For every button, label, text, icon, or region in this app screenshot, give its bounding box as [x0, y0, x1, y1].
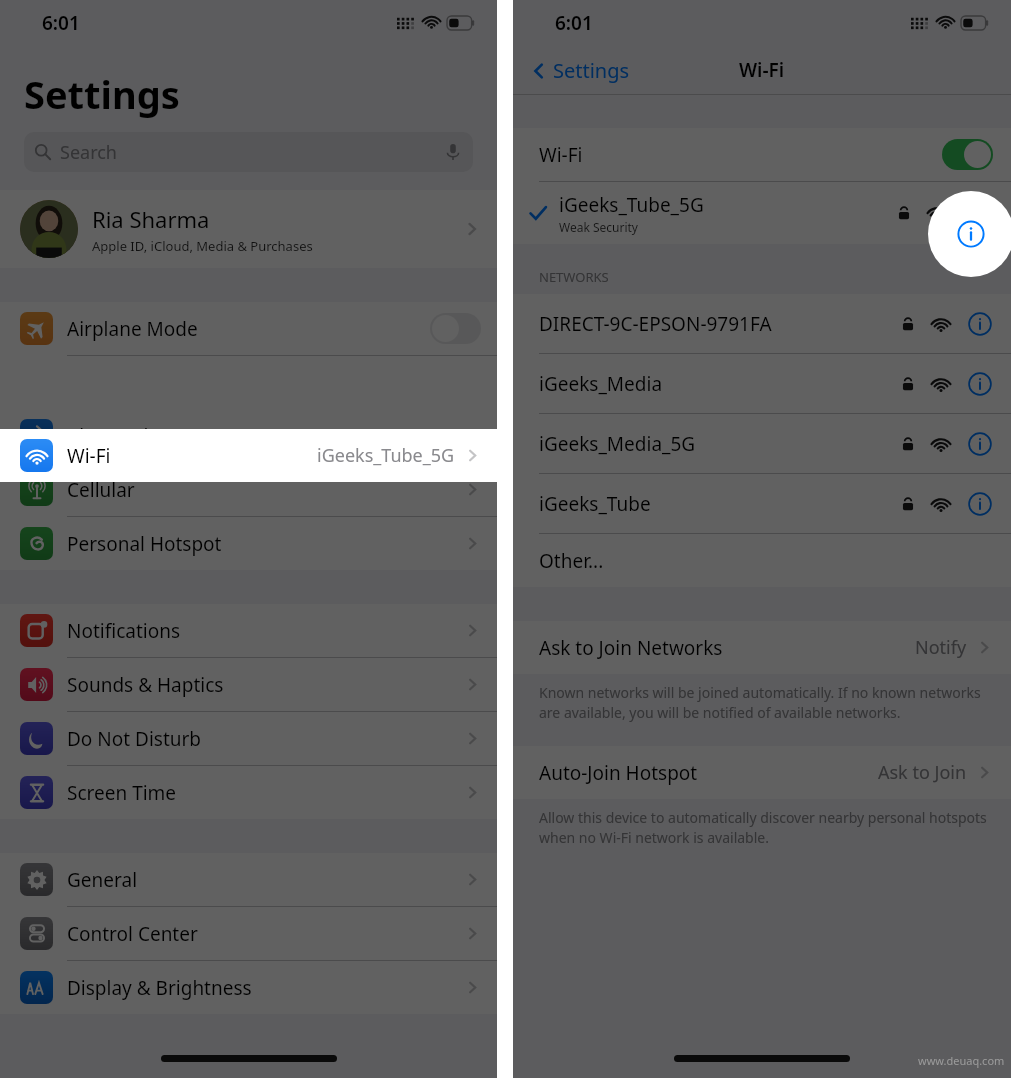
- button[interactable]: Other...: [513, 534, 1011, 587]
- button[interactable]: Cellular: [0, 463, 497, 516]
- staticText: DIRECT-9C-EPSON-9791FA: [539, 311, 772, 337]
- staticText: Weak Security: [559, 219, 638, 235]
- staticText: General: [67, 867, 138, 893]
- button[interactable]: Search: [24, 132, 473, 172]
- button[interactable]: Info for iGeeks_Media_5G: [967, 431, 993, 457]
- button[interactable]: iGeeks_Media_5G: [513, 414, 1011, 473]
- button[interactable]: Info for iGeeks_Tube: [967, 491, 993, 517]
- staticText: Settings: [24, 68, 180, 120]
- staticText: iGeeks_Media_5G: [539, 431, 696, 457]
- button[interactable]: Settings: [529, 57, 630, 84]
- staticText: Other...: [539, 548, 604, 574]
- staticText: Ask to Join Networks: [539, 635, 723, 661]
- button[interactable]: Info for iGeeks_Media: [967, 371, 993, 397]
- staticText: Wi-Fi: [539, 142, 583, 168]
- staticText: Cellular: [67, 477, 135, 503]
- button[interactable]: Bluetooth: [0, 409, 497, 462]
- staticText: Search: [60, 140, 117, 165]
- button[interactable]: Ria Sharma: [0, 190, 497, 268]
- staticText: Bluetooth: [67, 423, 156, 449]
- staticText: 6:01: [555, 10, 593, 36]
- staticText: Auto-Join Hotspot: [539, 760, 698, 786]
- staticText: NETWORKS: [539, 268, 609, 286]
- button[interactable]: Personal Hotspot: [0, 517, 497, 570]
- staticText: Notifications: [67, 618, 181, 644]
- staticText: iGeeks_Tube_5G: [559, 192, 704, 218]
- button[interactable]: Sounds & Haptics: [0, 658, 497, 711]
- staticText: Notify: [915, 635, 967, 660]
- staticText: Wi-Fi: [739, 57, 785, 83]
- staticText: 6:01: [42, 10, 80, 36]
- button[interactable]: Control Center: [0, 907, 497, 960]
- button[interactable]: Wi-Fi: [513, 128, 1011, 181]
- staticText: iGeeks_Tube_5G: [317, 443, 455, 468]
- button[interactable]: Display & Brightness: [0, 961, 497, 1014]
- button[interactable]: Notifications: [0, 604, 497, 657]
- button[interactable]: Do Not Disturb: [0, 712, 497, 765]
- staticText: www.deuaq.com: [918, 1053, 1005, 1068]
- button[interactable]: DIRECT-9C-EPSON-9791FA: [513, 294, 1011, 353]
- staticText: Wi-Fi: [67, 443, 111, 469]
- staticText: Control Center: [67, 921, 198, 947]
- button[interactable]: Info for DIRECT-9C-EPSON-9791FA: [967, 311, 993, 337]
- button[interactable]: Airplane Mode: [0, 302, 497, 355]
- button[interactable]: Off: [430, 313, 481, 344]
- staticText: Ria Sharma: [92, 204, 210, 234]
- staticText: Airplane Mode: [67, 316, 198, 342]
- staticText: Screen Time: [67, 780, 177, 806]
- staticText: Ask to Join: [878, 760, 967, 785]
- staticText: Known networks will be joined automatica…: [539, 683, 987, 722]
- staticText: Settings: [553, 57, 630, 84]
- staticText: iGeeks_Tube: [539, 491, 651, 517]
- staticText: Display & Brightness: [67, 975, 252, 1001]
- staticText: iGeeks_Media: [539, 371, 663, 397]
- button[interactable]: Ask to Join Networks: [513, 621, 1011, 674]
- staticText: Do Not Disturb: [67, 726, 202, 752]
- button[interactable]: Wi-Fi: [0, 429, 497, 482]
- staticText: Allow this device to automatically disco…: [539, 808, 987, 847]
- button[interactable]: iGeeks_Tube_5G: [513, 182, 1011, 244]
- staticText: Sounds & Haptics: [67, 672, 224, 698]
- button[interactable]: Network information: [928, 191, 1011, 277]
- button[interactable]: Screen Time: [0, 766, 497, 819]
- staticText: Personal Hotspot: [67, 531, 222, 557]
- staticText: On: [429, 423, 455, 448]
- button[interactable]: iGeeks_Tube: [513, 474, 1011, 533]
- button[interactable]: On: [942, 139, 993, 170]
- button[interactable]: Auto-Join Hotspot: [513, 746, 1011, 799]
- button[interactable]: iGeeks_Media: [513, 354, 1011, 413]
- button[interactable]: General: [0, 853, 497, 906]
- staticText: Apple ID, iCloud, Media & Purchases: [92, 237, 313, 255]
